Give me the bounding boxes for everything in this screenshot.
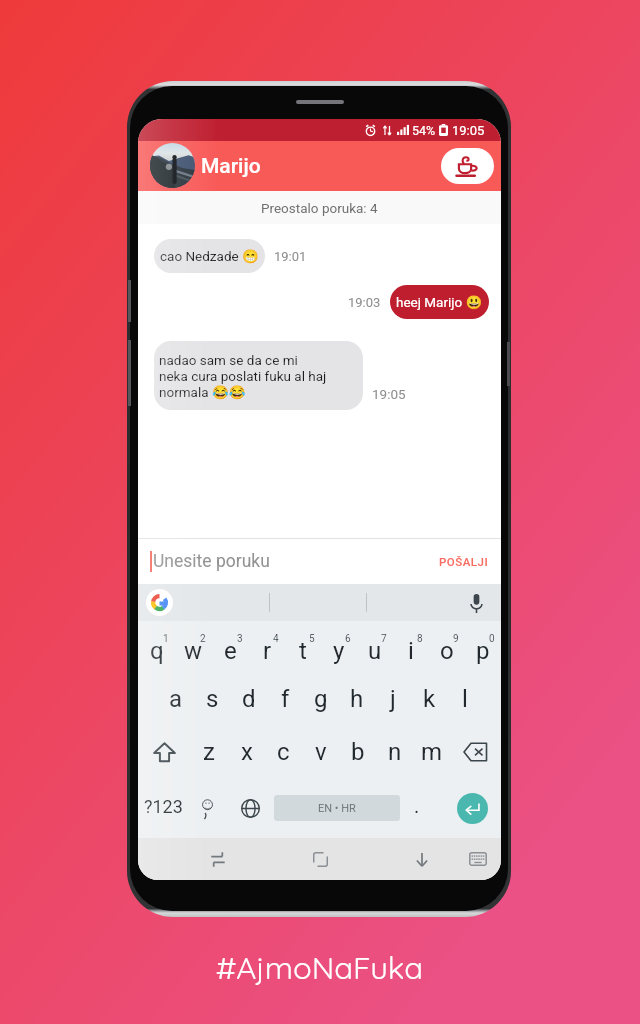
button[interactable]: nadao sam se da ce mi neka cura poslati … — [154, 341, 363, 410]
button[interactable]: g — [303, 673, 339, 725]
staticText: 5 — [309, 633, 315, 645]
staticText: 2 — [200, 633, 206, 645]
button[interactable]: a — [157, 673, 194, 725]
button[interactable]: Voice input — [463, 590, 489, 616]
button[interactable]: Keyboard — [460, 838, 496, 880]
staticText: i — [408, 637, 414, 665]
staticText: r — [263, 637, 272, 665]
button[interactable]: Emoji — [188, 779, 226, 837]
staticText: y — [333, 637, 345, 665]
button[interactable]: z — [190, 725, 228, 779]
staticText: nadao sam se da ce mi neka cura poslati … — [159, 352, 327, 400]
staticText: 3 — [237, 633, 243, 645]
button[interactable]: ?123 — [138, 779, 188, 837]
staticText: b — [351, 738, 365, 766]
button[interactable]: m — [413, 725, 450, 779]
staticText: g — [314, 685, 328, 713]
staticText: v — [315, 738, 327, 766]
button[interactable]: 5 — [285, 621, 321, 673]
button[interactable]: Backspace — [450, 725, 501, 779]
staticText: o — [440, 637, 454, 665]
staticText: s — [206, 685, 219, 713]
staticText: t — [299, 637, 307, 665]
button[interactable]: 7 — [357, 621, 393, 673]
staticText: p — [476, 637, 490, 665]
button[interactable]: cao Nedzade 😁 — [154, 239, 265, 273]
staticText: w — [184, 637, 203, 665]
staticText: d — [242, 685, 256, 713]
button[interactable]: n — [376, 725, 413, 779]
staticText: 8 — [417, 633, 423, 645]
staticText: Unesite poruku — [153, 551, 270, 572]
staticText: k — [423, 685, 436, 713]
button[interactable]: heej Marijo 😃 — [390, 285, 489, 319]
staticText: EN • HR — [318, 802, 356, 815]
staticText: . — [414, 794, 420, 817]
staticText: Preostalo poruka: 4 — [261, 200, 378, 216]
staticText: cao Nedzade 😁 — [160, 248, 259, 264]
button[interactable]: b — [339, 725, 376, 779]
button[interactable]: . — [400, 779, 434, 837]
button[interactable]: c — [265, 725, 302, 779]
staticText: 6 — [345, 633, 351, 645]
button[interactable]: Send coffee — [441, 148, 494, 184]
staticText: c — [277, 738, 290, 766]
staticText: 19:01 — [274, 249, 307, 264]
staticText: f — [281, 685, 290, 713]
button[interactable]: j — [375, 673, 411, 725]
staticText: 19:05 — [372, 386, 406, 402]
staticText: h — [350, 685, 364, 713]
button[interactable]: 3 — [212, 621, 249, 673]
staticText: ?123 — [144, 796, 183, 817]
button[interactable]: Enter — [457, 793, 488, 824]
button[interactable]: Shift — [138, 725, 190, 779]
button[interactable]: k — [411, 673, 447, 725]
staticText: POŠALJI — [439, 555, 489, 568]
staticText: #AjmoNaFuka — [216, 948, 424, 987]
button[interactable]: v — [302, 725, 339, 779]
button[interactable]: l — [447, 673, 483, 725]
button[interactable]: EN • HR — [274, 795, 400, 821]
staticText: 1 — [163, 633, 169, 645]
button[interactable]: h — [339, 673, 375, 725]
button[interactable]: 1 — [138, 621, 175, 673]
staticText: a — [169, 685, 183, 713]
button[interactable]: Back — [404, 838, 440, 880]
button[interactable]: 2 — [175, 621, 212, 673]
staticText: 19:05 — [452, 123, 485, 138]
staticText: n — [388, 738, 402, 766]
button[interactable]: 9 — [429, 621, 465, 673]
button[interactable]: 8 — [393, 621, 429, 673]
button[interactable]: Google — [146, 589, 173, 616]
button[interactable]: f — [267, 673, 303, 725]
button[interactable]: 6 — [321, 621, 357, 673]
button[interactable]: x — [228, 725, 265, 779]
button[interactable]: d — [231, 673, 267, 725]
staticText: u — [368, 637, 382, 665]
button[interactable]: Change language — [226, 779, 274, 837]
staticText: q — [150, 637, 164, 665]
staticText: 19:03 — [348, 295, 381, 310]
button[interactable]: 4 — [249, 621, 285, 673]
button[interactable]: Recents — [200, 838, 236, 880]
staticText: 0 — [489, 633, 495, 645]
button[interactable]: s — [194, 673, 231, 725]
staticText: 9 — [453, 633, 459, 645]
button[interactable]: POŠALJI — [427, 545, 501, 578]
staticText: e — [224, 637, 237, 665]
staticText: z — [203, 738, 215, 766]
staticText: 4 — [273, 633, 279, 645]
staticText: Marijo — [201, 154, 261, 179]
staticText: j — [390, 685, 396, 713]
button[interactable]: Profile photo — [150, 143, 195, 188]
button[interactable]: 0 — [465, 621, 501, 673]
staticText: 7 — [381, 633, 387, 645]
staticText: l — [462, 685, 468, 713]
staticText: x — [241, 738, 253, 766]
staticText: m — [421, 738, 443, 766]
button[interactable]: Home — [302, 838, 338, 880]
staticText: 54% — [412, 123, 436, 138]
staticText: heej Marijo 😃 — [396, 294, 483, 310]
